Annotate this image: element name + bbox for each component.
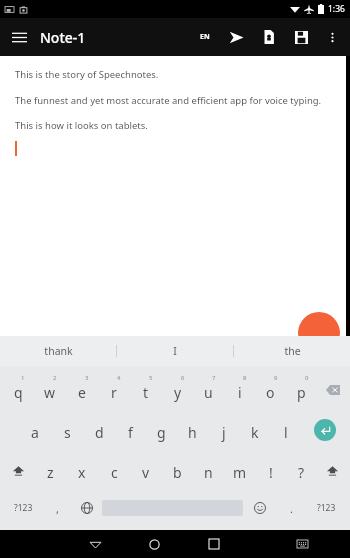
staticText: 5 (149, 374, 153, 382)
button[interactable]: d (83, 410, 115, 450)
button[interactable]: Emoji (243, 490, 277, 526)
button[interactable]: 2 (34, 370, 66, 410)
staticText: ?123 (317, 502, 336, 514)
button[interactable]: thank (0, 336, 116, 366)
staticText: This is the story of Speechnotes. (15, 68, 159, 81)
staticText: x (78, 463, 86, 482)
button[interactable]: s (51, 410, 83, 450)
button[interactable]: ?123 (2, 490, 44, 526)
button[interactable]: 9 (255, 370, 286, 410)
button[interactable]: v (130, 450, 162, 490)
button[interactable]: 8 (224, 370, 255, 410)
button[interactable]: Backspace (317, 370, 348, 410)
button[interactable]: . (277, 490, 305, 526)
button[interactable]: Send (219, 20, 253, 54)
button[interactable]: n (193, 450, 224, 490)
button[interactable]: Save (285, 21, 317, 53)
staticText: 9 (274, 374, 278, 382)
button[interactable]: f (115, 410, 146, 450)
button[interactable]: k (239, 410, 270, 450)
staticText: b (173, 463, 182, 482)
staticText: z (47, 463, 54, 482)
button[interactable]: a (19, 410, 51, 450)
staticText: 0 (305, 374, 309, 382)
staticText: This is how it looks on tablets. (15, 119, 148, 132)
button[interactable]: m (224, 450, 255, 490)
button[interactable]: z (34, 450, 66, 490)
staticText: a (31, 423, 39, 442)
staticText: 1 (21, 374, 25, 382)
staticText: g (157, 423, 166, 442)
staticText: 2 (53, 374, 57, 382)
staticText: Note-1 (40, 28, 86, 47)
staticText: t (143, 383, 149, 402)
button[interactable]: Back (66, 530, 125, 558)
staticText: h (188, 423, 197, 442)
button[interactable]: Keyboard (276, 530, 329, 558)
staticText: ? (298, 463, 305, 482)
staticText: The funnest and yet most accurate and ef… (15, 94, 322, 107)
staticText: f (128, 423, 133, 442)
staticText: c (111, 463, 118, 482)
staticText: q (14, 383, 23, 402)
button[interactable]: 3 (66, 370, 98, 410)
staticText: I (173, 344, 177, 358)
staticText: ! (269, 463, 273, 482)
button[interactable]: j (208, 410, 239, 450)
button[interactable]: Shift (317, 450, 348, 490)
staticText: e (78, 383, 86, 402)
button[interactable]: Record (298, 312, 340, 354)
staticText: p (297, 383, 306, 402)
staticText: . (290, 501, 293, 516)
staticText: n (204, 463, 213, 482)
button[interactable]: ? (286, 450, 317, 490)
staticText: the (284, 344, 301, 358)
button[interactable]: , (44, 490, 71, 526)
button[interactable]: 0 (286, 370, 317, 410)
staticText: w (44, 383, 56, 402)
staticText: thank (44, 344, 73, 358)
button[interactable]: 4 (98, 370, 130, 410)
button[interactable]: h (177, 410, 208, 450)
button[interactable]: Enter (301, 410, 348, 450)
button[interactable]: ?123 (305, 490, 348, 526)
staticText: y (174, 383, 182, 402)
button[interactable]: 1 (2, 370, 34, 410)
button[interactable]: Recents (184, 530, 243, 558)
staticText: 8 (243, 374, 247, 382)
button[interactable]: 6 (162, 370, 193, 410)
staticText: 4 (117, 374, 121, 382)
button[interactable]: the (234, 336, 350, 366)
button[interactable]: c (98, 450, 130, 490)
staticText: i (238, 383, 242, 402)
button[interactable]: 7 (193, 370, 224, 410)
staticText: 3 (85, 374, 89, 382)
staticText: m (233, 463, 247, 482)
button[interactable]: l (270, 410, 301, 450)
staticText: 6 (181, 374, 185, 382)
button[interactable]: x (66, 450, 98, 490)
staticText: k (251, 423, 259, 442)
staticText: ?123 (14, 502, 33, 514)
button[interactable]: g (146, 410, 177, 450)
button[interactable]: More options (317, 22, 347, 52)
button[interactable]: 5 (130, 370, 162, 410)
button[interactable]: Change language (71, 490, 102, 526)
button[interactable]: Menu (0, 18, 38, 56)
staticText: 7 (212, 374, 216, 382)
button[interactable]: I (117, 336, 233, 366)
staticText: d (95, 423, 104, 442)
staticText: l (284, 423, 288, 442)
staticText: r (111, 383, 117, 402)
staticText: , (56, 501, 59, 516)
staticText: 1:36 (328, 3, 345, 15)
button[interactable]: Home (125, 530, 184, 558)
staticText: j (222, 423, 226, 442)
button[interactable]: ! (255, 450, 286, 490)
button[interactable]: EN (191, 18, 219, 56)
button[interactable]: b (162, 450, 193, 490)
staticText: u (204, 383, 213, 402)
button[interactable]: Shift (2, 450, 34, 490)
button[interactable]: Export (253, 21, 285, 53)
